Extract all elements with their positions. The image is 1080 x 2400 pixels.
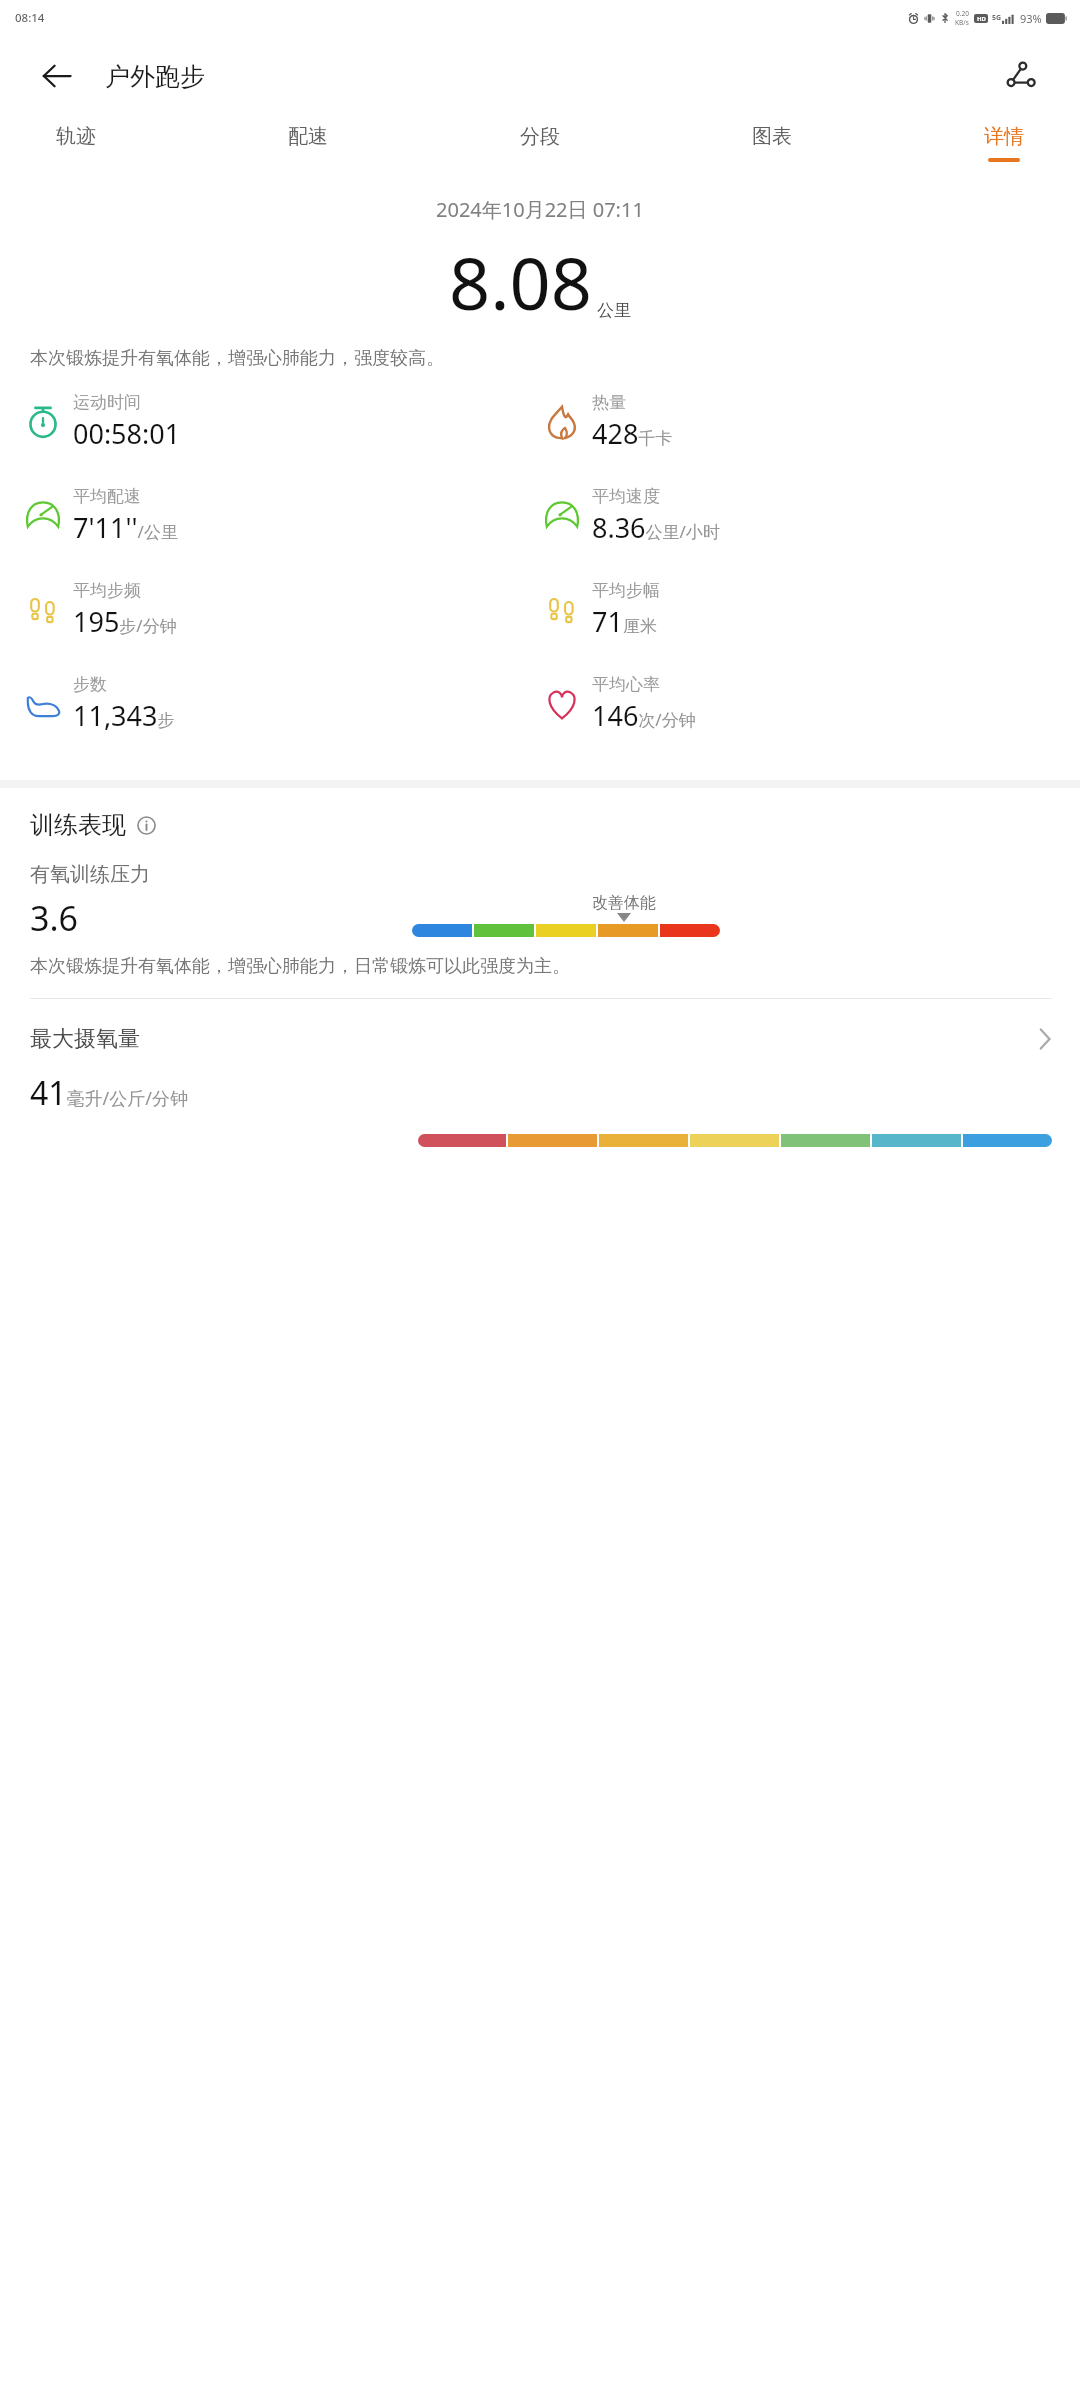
staticText: 运动时间 <box>73 392 141 413</box>
button[interactable]: 运动时间 <box>24 392 543 452</box>
staticText: 8.08 <box>449 233 592 331</box>
button[interactable]: 平均速度 <box>543 486 1062 546</box>
staticText: 本次锻炼提升有氧体能，增强心肺能力，日常锻炼可以此强度为主。 <box>30 955 570 978</box>
staticText: 公里 <box>597 300 631 321</box>
staticText: 详情 <box>984 124 1024 149</box>
staticText: 最大摄氧量 <box>30 1025 140 1053</box>
staticText: 平均配速 <box>73 486 141 507</box>
button[interactable]: Info <box>134 813 158 837</box>
staticText: 7'11''/公里 <box>73 509 178 546</box>
button[interactable]: 步数 <box>24 674 543 734</box>
staticText: 93% <box>1020 11 1042 26</box>
staticText: 08:14 <box>15 10 45 26</box>
button[interactable]: 详情 <box>974 116 1034 170</box>
button[interactable]: 最大摄氧量 <box>30 1025 1052 1053</box>
staticText: 0.20 <box>956 9 969 18</box>
staticText: 平均速度 <box>592 486 660 507</box>
staticText: 热量 <box>592 392 626 413</box>
staticText: 3.6 <box>30 895 79 941</box>
button[interactable]: 平均步幅 <box>543 580 1062 640</box>
staticText: 图表 <box>752 124 792 149</box>
staticText: 00:58:01 <box>73 415 181 452</box>
staticText: 195步/分钟 <box>73 603 177 640</box>
staticText: 轨迹 <box>56 124 96 149</box>
button[interactable]: Share <box>998 53 1044 99</box>
staticText: 有氧训练压力 <box>30 862 150 887</box>
staticText: 2024年10月22日 07:11 <box>436 196 644 223</box>
staticText: KB/s <box>955 18 969 27</box>
button[interactable]: 平均步频 <box>24 580 543 640</box>
button[interactable]: 平均配速 <box>24 486 543 546</box>
staticText: HD <box>977 15 986 23</box>
staticText: 户外跑步 <box>105 61 205 92</box>
staticText: 146次/分钟 <box>592 697 696 734</box>
staticText: 8.36公里/小时 <box>592 509 720 546</box>
staticText: 71厘米 <box>592 603 657 640</box>
staticText: 本次锻炼提升有氧体能，增强心肺能力，强度较高。 <box>30 347 1052 370</box>
staticText: 平均心率 <box>592 674 660 695</box>
button[interactable]: 热量 <box>543 392 1062 452</box>
button[interactable]: 分段 <box>510 116 570 170</box>
staticText: 41毫升/公斤/分钟 <box>30 1071 188 1115</box>
staticText: 428千卡 <box>592 415 673 452</box>
staticText: 11,343步 <box>73 697 175 734</box>
button[interactable]: 平均心率 <box>543 674 1062 734</box>
staticText: 平均步幅 <box>592 580 660 601</box>
staticText: 改善体能 <box>592 893 656 913</box>
staticText: 5G <box>992 13 1002 23</box>
button[interactable]: 配速 <box>278 116 338 170</box>
button[interactable]: 轨迹 <box>46 116 106 170</box>
button[interactable]: 图表 <box>742 116 802 170</box>
staticText: 步数 <box>73 674 107 695</box>
staticText: 训练表现 <box>30 810 126 840</box>
staticText: 分段 <box>520 124 560 149</box>
staticText: 平均步频 <box>73 580 141 601</box>
staticText: 配速 <box>288 124 328 149</box>
button[interactable]: Back <box>36 55 78 97</box>
